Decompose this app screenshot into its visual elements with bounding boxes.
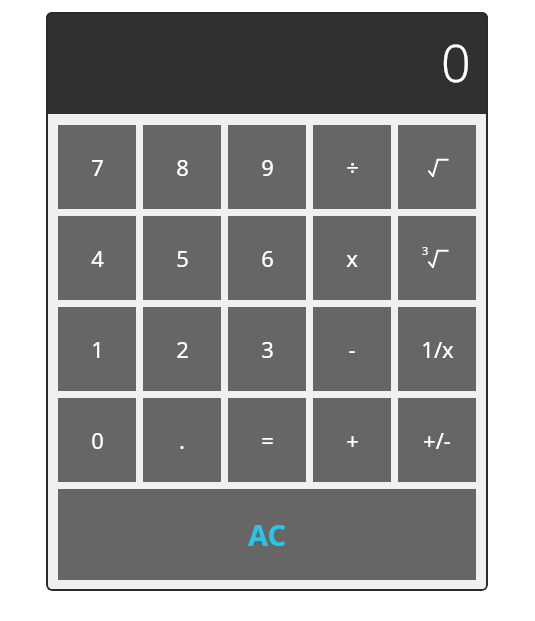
button[interactable]: 8 <box>143 125 221 209</box>
button[interactable]: AC <box>58 489 476 580</box>
staticText: 4 <box>91 243 104 273</box>
button[interactable]: 2 <box>143 307 221 391</box>
staticText: 0 <box>91 425 104 455</box>
button[interactable]: 4 <box>58 216 136 300</box>
button[interactable]: 9 <box>228 125 306 209</box>
button[interactable]: 7 <box>58 125 136 209</box>
staticText: 6 <box>261 243 274 273</box>
staticText: 5 <box>176 243 189 273</box>
button[interactable]: Equals <box>228 398 306 482</box>
staticText: 1/x <box>421 334 454 364</box>
staticText: x <box>346 243 358 273</box>
staticText: . <box>179 425 185 455</box>
staticText: + <box>346 425 359 455</box>
staticText: - <box>348 334 356 364</box>
staticText: 9 <box>261 152 274 182</box>
button[interactable]: Subtract <box>313 307 391 391</box>
staticText: 2 <box>176 334 189 364</box>
button[interactable]: Add <box>313 398 391 482</box>
button[interactable]: Multiply <box>313 216 391 300</box>
staticText: +/- <box>423 425 451 455</box>
button[interactable]: 1 <box>58 307 136 391</box>
button[interactable]: +/- <box>398 398 476 482</box>
button[interactable]: 0 <box>58 398 136 482</box>
button[interactable]: Divide <box>313 125 391 209</box>
staticText: AC <box>248 515 287 554</box>
staticText: ÷ <box>346 152 359 182</box>
button[interactable]: 3 <box>228 307 306 391</box>
button[interactable]: Cube root <box>398 216 476 300</box>
staticText: 7 <box>91 152 104 182</box>
button[interactable]: 5 <box>143 216 221 300</box>
button[interactable]: 1/x <box>398 307 476 391</box>
staticText: 1 <box>91 334 104 364</box>
button[interactable]: Square root <box>398 125 476 209</box>
staticText: 3 <box>261 334 274 364</box>
staticText: = <box>261 425 274 455</box>
staticText: 8 <box>176 152 189 182</box>
staticText: 0 <box>441 26 471 97</box>
staticText: 3 <box>422 243 429 258</box>
button[interactable]: 6 <box>228 216 306 300</box>
button[interactable]: Decimal point <box>143 398 221 482</box>
